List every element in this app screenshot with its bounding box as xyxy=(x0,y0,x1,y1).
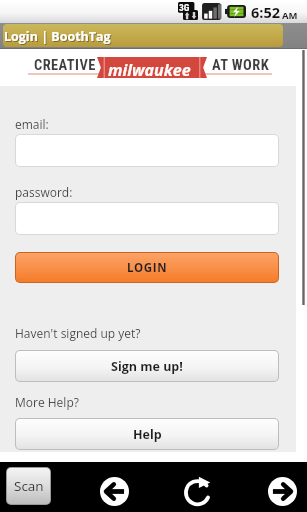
staticText: LOGIN xyxy=(127,260,168,276)
staticText: milwaukee xyxy=(108,59,191,81)
staticText: Login | BoothTag xyxy=(4,28,111,45)
button[interactable]: Forward xyxy=(268,477,297,506)
staticText: Help xyxy=(133,426,162,443)
staticText: 6:52 xyxy=(251,3,281,23)
staticText: AT WORK xyxy=(212,57,270,74)
staticText: Scan xyxy=(14,477,44,495)
button[interactable]: Back xyxy=(100,477,129,506)
staticText: 3G xyxy=(179,2,190,13)
staticText: Sign me up! xyxy=(111,358,183,375)
staticText: email: xyxy=(15,116,49,132)
staticText: Login | BoothTag xyxy=(5,29,112,46)
button[interactable]: Help xyxy=(16,419,278,449)
button[interactable]: Sign me up! xyxy=(16,351,278,381)
button[interactable]: Scan xyxy=(7,468,50,504)
staticText: More Help? xyxy=(15,394,79,410)
staticText: password: xyxy=(15,184,73,200)
staticText: CREATIVE xyxy=(34,57,96,74)
button[interactable]: LOGIN xyxy=(16,253,278,282)
staticText: AM xyxy=(282,9,298,22)
staticText: Haven't signed up yet? xyxy=(15,325,141,341)
button[interactable]: Refresh xyxy=(183,477,212,506)
